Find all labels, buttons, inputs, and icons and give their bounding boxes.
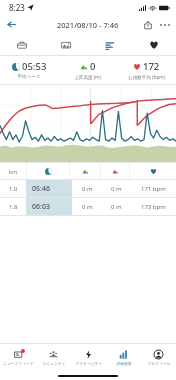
staticText: 心拍数平均 (bpm)	[128, 74, 165, 80]
staticText: 2021/08/10 - 7:46	[57, 20, 119, 30]
staticText: ニュースフィード	[3, 361, 34, 366]
staticText: 8:23	[9, 2, 25, 13]
staticText: 172	[143, 60, 160, 73]
staticText: 0 m	[111, 203, 122, 211]
staticText: 05:53	[22, 60, 47, 73]
staticText: 173 bpm	[141, 203, 166, 211]
button[interactable]: Overview	[0, 34, 44, 55]
staticText: 0	[90, 60, 96, 73]
staticText: 0 m	[82, 185, 93, 193]
button[interactable]: アクティビティ	[71, 344, 106, 371]
button[interactable]: 05:53	[0, 56, 58, 84]
button[interactable]: プロフィール	[141, 344, 176, 371]
staticText: アクティビティ	[75, 361, 103, 366]
button[interactable]: More options	[156, 16, 173, 33]
staticText: コミュニティ	[42, 361, 66, 366]
staticText: プロフィール	[147, 361, 171, 366]
button[interactable]: 172	[117, 56, 176, 84]
button[interactable]: Share	[139, 16, 156, 33]
staticText: 171 bpm	[141, 185, 166, 193]
staticText: 1.8	[9, 203, 18, 211]
staticText: 06:03	[32, 202, 50, 212]
button[interactable]: 1.0	[0, 180, 176, 197]
button[interactable]: コミュニティ	[36, 344, 71, 371]
button[interactable]: Back	[3, 16, 20, 33]
button[interactable]: 詳細画面	[106, 344, 141, 371]
staticText: 0 m	[82, 203, 93, 211]
button[interactable]: 1.8	[0, 198, 176, 215]
staticText: 0 m	[111, 185, 122, 193]
button[interactable]: Favorite	[132, 34, 176, 55]
button[interactable]: Charts	[88, 34, 132, 55]
button[interactable]: 0	[58, 56, 117, 84]
staticText: 05:46	[32, 184, 50, 194]
button[interactable]: Photos	[44, 34, 88, 55]
staticText: 上昇高度 (m)	[74, 74, 101, 80]
staticText: km	[9, 168, 18, 175]
staticText: 平均ペース	[17, 74, 41, 80]
staticText: 1.0	[9, 185, 18, 193]
staticText: 詳細画面	[116, 361, 132, 366]
button[interactable]: ニュースフィード	[0, 344, 36, 371]
